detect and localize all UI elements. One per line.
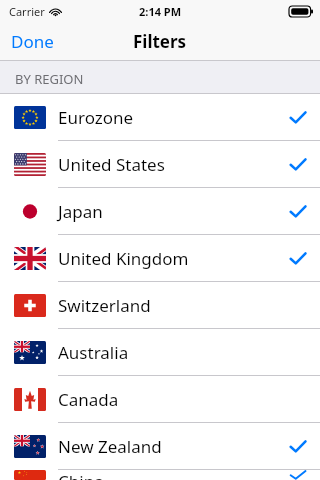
button[interactable]: Switzerland (0, 282, 320, 328)
staticText: United States (58, 153, 165, 176)
staticText: Australia (58, 341, 129, 364)
button[interactable]: New Zealand (0, 423, 320, 469)
staticText: Filters (133, 30, 187, 53)
button[interactable]: Eurozone (0, 94, 320, 140)
staticText: Done (11, 30, 54, 53)
staticText: United Kingdom (58, 247, 189, 270)
staticText: Eurozone (58, 106, 134, 129)
staticText: BY REGION (15, 70, 84, 88)
button[interactable]: United States (0, 141, 320, 187)
staticText: Carrier (9, 4, 45, 19)
button[interactable]: Done (0, 22, 65, 61)
staticText: Canada (58, 388, 119, 411)
staticText: Japan (58, 200, 103, 223)
staticText: Switzerland (58, 294, 151, 317)
button[interactable]: China (0, 470, 320, 480)
staticText: 2:14 PM (139, 4, 182, 19)
staticText: China (58, 470, 104, 480)
button[interactable]: Japan (0, 188, 320, 234)
button[interactable]: Australia (0, 329, 320, 375)
button[interactable]: United Kingdom (0, 235, 320, 281)
button[interactable]: Canada (0, 376, 320, 422)
staticText: New Zealand (58, 435, 162, 458)
